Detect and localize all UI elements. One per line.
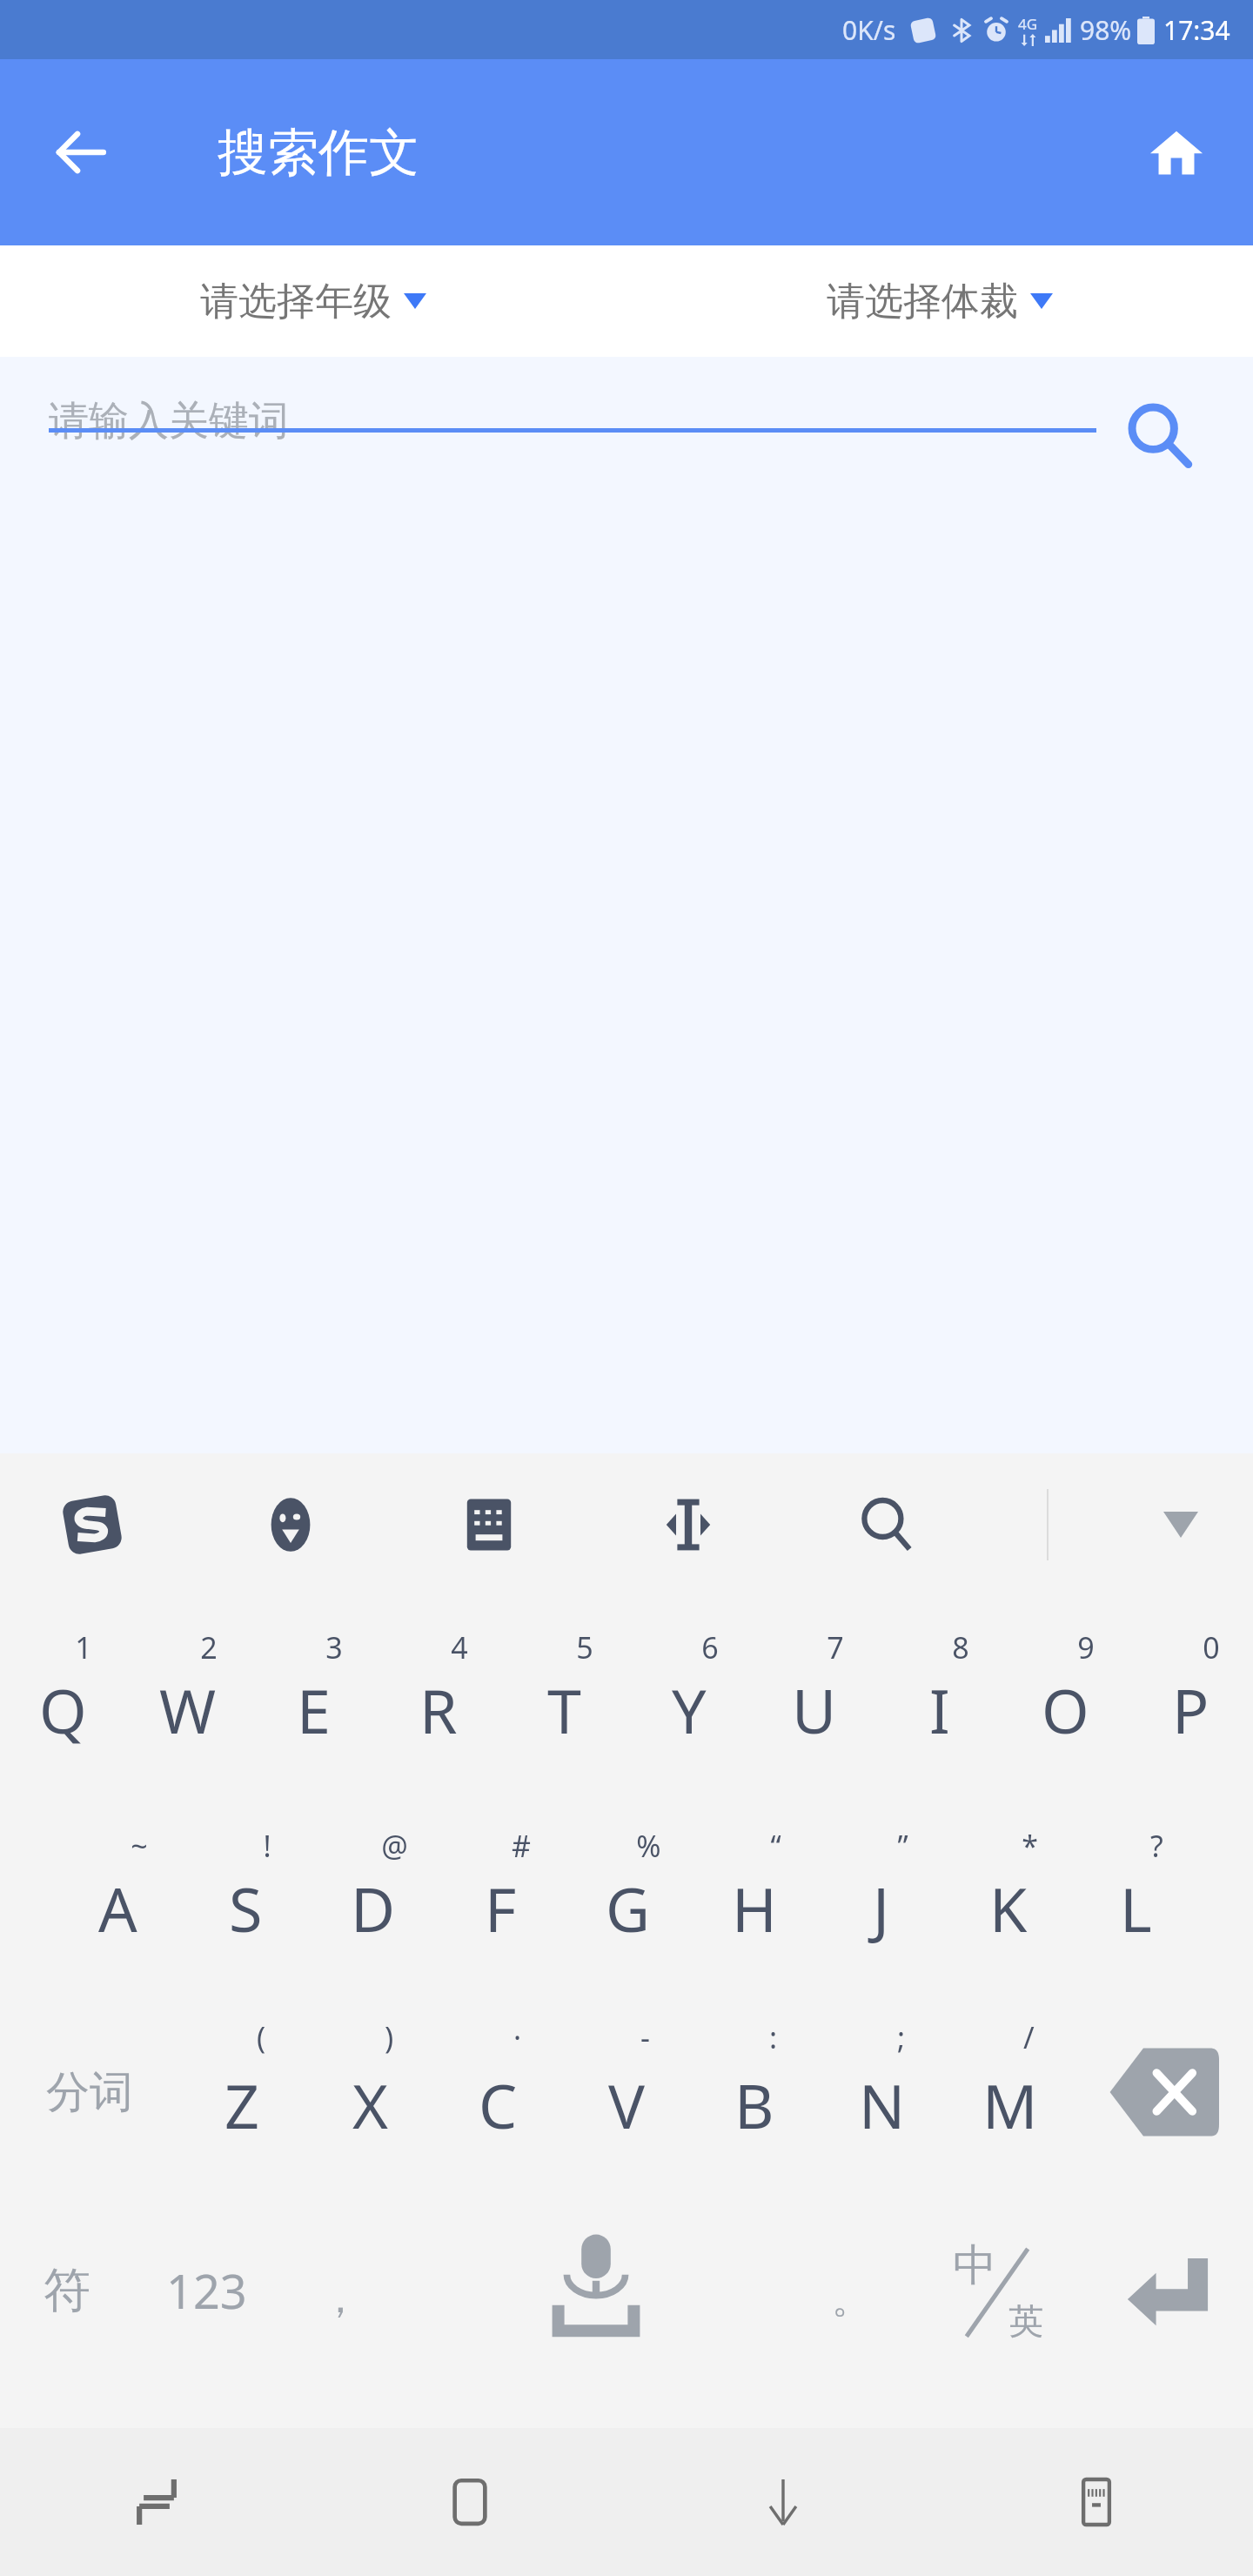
button[interactable]: Space — [401, 2191, 790, 2390]
staticText: @ — [381, 1826, 408, 1866]
staticText: 98% — [1080, 12, 1132, 48]
staticText: 0K/s — [842, 12, 896, 48]
button[interactable]: ( — [178, 1993, 306, 2191]
staticText: 17:34 — [1163, 12, 1230, 48]
staticText: C — [479, 2063, 518, 2146]
staticText: * — [1022, 1826, 1038, 1866]
staticText: E — [297, 1668, 331, 1751]
staticText: 搜索作文 — [218, 121, 419, 184]
button[interactable]: 分词 — [0, 1993, 178, 2191]
staticText: 分词 — [46, 2065, 133, 2120]
button[interactable]: Home — [313, 2428, 626, 2576]
button[interactable]: ” — [818, 1794, 945, 1993]
button[interactable]: Chinese English toggle — [912, 2191, 1082, 2390]
staticText: 3 — [325, 1627, 343, 1667]
button[interactable]: Switch keyboard — [940, 2428, 1253, 2576]
button[interactable]: Keyboard layout — [449, 1485, 529, 1565]
staticText: 2 — [200, 1627, 218, 1667]
button[interactable]: 6 — [626, 1596, 752, 1794]
staticText: 。 — [832, 2276, 870, 2324]
button[interactable]: Recents — [0, 2428, 313, 2576]
staticText: B — [734, 2063, 774, 2146]
staticText: 9 — [1077, 1627, 1095, 1667]
button[interactable]: Hide keyboard — [626, 2428, 940, 2576]
button[interactable]: Move cursor — [648, 1485, 728, 1565]
button[interactable]: ? — [1072, 1794, 1199, 1993]
button[interactable]: Backspace — [1074, 1993, 1253, 2191]
staticText: “ — [770, 1826, 781, 1866]
button[interactable]: 9 — [1002, 1596, 1128, 1794]
staticText: V — [608, 2063, 645, 2146]
staticText: ! — [263, 1826, 271, 1866]
button[interactable]: ) — [306, 1993, 434, 2191]
staticText: U — [792, 1668, 837, 1751]
button[interactable]: Search — [1112, 387, 1208, 483]
staticText: Z — [224, 2063, 260, 2146]
button[interactable]: 7 — [752, 1596, 877, 1794]
staticText: # — [512, 1826, 531, 1866]
staticText: 5 — [576, 1627, 593, 1667]
staticText: ) — [385, 2017, 394, 2057]
staticText: K — [989, 1867, 1028, 1949]
button[interactable]: 请输入关键词 — [49, 410, 1096, 460]
button[interactable]: 0 — [1128, 1596, 1253, 1794]
button[interactable]: 8 — [877, 1596, 1002, 1794]
button[interactable]: * — [945, 1794, 1072, 1993]
staticText: Q — [39, 1668, 87, 1751]
staticText: 英 — [1008, 2299, 1043, 2343]
button[interactable]: Back — [40, 111, 124, 194]
staticText: 请选择年级 — [200, 278, 392, 325]
staticText: ， — [320, 2274, 360, 2324]
button[interactable]: 1 — [0, 1596, 125, 1794]
staticText: 中 — [953, 2238, 996, 2293]
button[interactable]: ~ — [54, 1794, 182, 1993]
button[interactable]: Home — [1135, 111, 1218, 194]
staticText: J — [873, 1867, 890, 1949]
button[interactable]: 123 — [133, 2191, 279, 2390]
staticText: H — [732, 1867, 777, 1949]
staticText: 7 — [827, 1627, 844, 1667]
button[interactable]: Sogou input — [52, 1485, 132, 1565]
button[interactable]: 3 — [251, 1596, 376, 1794]
button[interactable]: 请选择年级 — [0, 245, 626, 357]
button[interactable]: - — [562, 1993, 690, 2191]
staticText: 8 — [952, 1627, 969, 1667]
staticText: G — [606, 1867, 650, 1949]
staticText: 请选择体裁 — [827, 278, 1018, 325]
button[interactable]: Collapse — [1143, 1487, 1218, 1562]
staticText: 0 — [1203, 1627, 1220, 1667]
staticText: W — [159, 1668, 217, 1751]
button[interactable]: 。 — [790, 2191, 912, 2390]
button[interactable]: / — [946, 1993, 1074, 2191]
staticText: D — [351, 1867, 396, 1949]
staticText: % — [636, 1826, 661, 1866]
button[interactable]: “ — [691, 1794, 818, 1993]
button[interactable]: 5 — [501, 1596, 626, 1794]
button[interactable]: 2 — [125, 1596, 251, 1794]
button[interactable]: Enter — [1082, 2191, 1253, 2390]
button[interactable]: 符 — [0, 2191, 133, 2390]
staticText: - — [640, 2017, 650, 2057]
staticText: 请输入关键词 — [49, 396, 289, 446]
button[interactable]: · — [434, 1993, 562, 2191]
button[interactable]: 4 — [376, 1596, 501, 1794]
button[interactable]: % — [564, 1794, 691, 1993]
staticText: T — [547, 1668, 581, 1751]
staticText: S — [229, 1867, 263, 1949]
button[interactable]: # — [437, 1794, 564, 1993]
staticText: ” — [897, 1826, 908, 1866]
button[interactable]: ; — [818, 1993, 946, 2191]
button[interactable]: 请选择体裁 — [626, 245, 1253, 357]
button[interactable]: Emoji — [251, 1485, 331, 1565]
staticText: L — [1120, 1867, 1152, 1949]
button[interactable]: @ — [310, 1794, 437, 1993]
button[interactable]: : — [690, 1993, 818, 2191]
staticText: F — [485, 1867, 517, 1949]
staticText: N — [859, 2063, 906, 2146]
staticText: 4G — [1018, 14, 1038, 34]
staticText: P — [1172, 1668, 1209, 1751]
button[interactable]: Search — [848, 1485, 928, 1565]
staticText: R — [419, 1668, 458, 1751]
button[interactable]: ! — [182, 1794, 310, 1993]
